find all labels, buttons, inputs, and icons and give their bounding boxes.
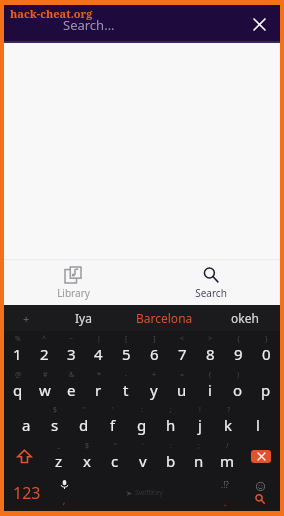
staticText: j bbox=[198, 415, 202, 435]
staticText: q bbox=[13, 380, 23, 400]
staticText: m bbox=[220, 451, 235, 471]
staticText: k bbox=[224, 415, 233, 435]
staticText: 123 bbox=[13, 482, 41, 504]
staticText: % bbox=[15, 334, 21, 344]
button[interactable]: ~ bbox=[58, 331, 85, 367]
staticText: - bbox=[125, 370, 128, 380]
button[interactable]: ' bbox=[129, 437, 157, 475]
button[interactable]: : bbox=[127, 403, 156, 437]
button[interactable]: l bbox=[243, 403, 272, 437]
button[interactable]: Voice input bbox=[49, 475, 80, 511]
button[interactable]: ; bbox=[156, 403, 185, 437]
button[interactable]: = bbox=[168, 367, 196, 403]
button[interactable]: Library bbox=[4, 259, 142, 305]
button[interactable]: ? bbox=[214, 403, 243, 437]
button[interactable]: $ bbox=[73, 437, 101, 475]
button[interactable]: } bbox=[252, 331, 280, 367]
staticText: 7 bbox=[178, 344, 187, 364]
button[interactable]: ; bbox=[185, 437, 213, 475]
button[interactable]: { bbox=[224, 331, 252, 367]
staticText: < bbox=[180, 334, 185, 344]
staticText: + bbox=[23, 311, 30, 326]
button[interactable]: % bbox=[4, 331, 31, 367]
staticText: .!? bbox=[221, 479, 229, 490]
staticText: Library bbox=[57, 286, 90, 300]
button[interactable]: " bbox=[101, 437, 129, 475]
staticText: | bbox=[97, 334, 101, 344]
staticText: y bbox=[150, 380, 158, 400]
button[interactable]: < bbox=[168, 331, 196, 367]
button[interactable]: | bbox=[85, 331, 112, 367]
staticText: + bbox=[152, 370, 157, 380]
staticText: Search bbox=[195, 286, 227, 300]
button[interactable]: ^ bbox=[31, 331, 58, 367]
staticText: i bbox=[208, 380, 212, 400]
button[interactable]: ) bbox=[224, 367, 252, 403]
button[interactable]: _ bbox=[44, 437, 73, 475]
button[interactable]: # bbox=[31, 367, 58, 403]
staticText: _ bbox=[57, 441, 61, 451]
button[interactable]: Backspace bbox=[241, 437, 280, 475]
button[interactable]: Search bbox=[240, 475, 280, 511]
staticText: } bbox=[265, 334, 268, 344]
staticText: r bbox=[95, 380, 102, 400]
staticText: u bbox=[177, 380, 187, 400]
staticText: 3 bbox=[67, 344, 76, 364]
button[interactable]: * bbox=[85, 367, 112, 403]
button[interactable]: & bbox=[58, 367, 85, 403]
staticText: ) bbox=[237, 370, 240, 380]
button[interactable]: ] bbox=[140, 331, 168, 367]
staticText: ~ bbox=[69, 334, 74, 344]
button[interactable]: 123 bbox=[4, 475, 49, 511]
staticText: hack-cheat.org bbox=[10, 6, 93, 21]
staticText: . bbox=[224, 497, 227, 508]
button[interactable]: .!? bbox=[209, 475, 240, 511]
staticText: / bbox=[226, 441, 229, 451]
button[interactable]: [ bbox=[112, 331, 140, 367]
staticText: ( bbox=[209, 370, 212, 380]
button[interactable]: Shift bbox=[4, 437, 44, 475]
staticText: a bbox=[22, 415, 31, 435]
button[interactable]: - bbox=[112, 367, 140, 403]
button[interactable]: Iya bbox=[48, 305, 119, 331]
staticText: ? bbox=[227, 405, 231, 415]
button[interactable]: p bbox=[252, 367, 280, 403]
button[interactable]: " bbox=[69, 403, 98, 437]
button[interactable]: ' bbox=[98, 403, 127, 437]
button[interactable]: okeh bbox=[210, 305, 280, 331]
button[interactable]: $ bbox=[40, 403, 69, 437]
staticText: # bbox=[43, 370, 48, 380]
staticText: " bbox=[114, 441, 117, 451]
button[interactable]: > bbox=[196, 331, 224, 367]
staticText: g bbox=[137, 415, 147, 435]
button[interactable]: : bbox=[157, 437, 185, 475]
staticText: b bbox=[166, 451, 176, 471]
staticText: > bbox=[208, 334, 213, 344]
staticText: 8 bbox=[206, 344, 215, 364]
button[interactable]: Close bbox=[246, 11, 272, 37]
staticText: n bbox=[194, 451, 204, 471]
staticText: okeh bbox=[231, 310, 259, 326]
staticText: 6 bbox=[150, 344, 159, 364]
button[interactable]: + bbox=[140, 367, 168, 403]
button[interactable]: a bbox=[12, 403, 40, 437]
button[interactable]: + bbox=[4, 305, 48, 331]
staticText: * bbox=[97, 370, 101, 380]
button[interactable]: Barcelona bbox=[119, 305, 210, 331]
button[interactable]: / bbox=[213, 437, 241, 475]
staticText: = bbox=[180, 370, 185, 380]
staticText: 0 bbox=[262, 344, 271, 364]
staticText: t bbox=[123, 380, 129, 400]
staticText: Barcelona bbox=[136, 310, 193, 326]
staticText: x bbox=[83, 451, 91, 471]
staticText: Search... bbox=[63, 16, 115, 34]
staticText: Iya bbox=[75, 310, 92, 326]
button[interactable]: ! bbox=[185, 403, 214, 437]
staticText: f bbox=[110, 415, 116, 435]
button[interactable]: Search bbox=[142, 259, 280, 305]
staticText: 2 bbox=[40, 344, 49, 364]
staticText: ] bbox=[153, 334, 156, 344]
button[interactable]: @ bbox=[4, 367, 31, 403]
button[interactable]: ( bbox=[196, 367, 224, 403]
